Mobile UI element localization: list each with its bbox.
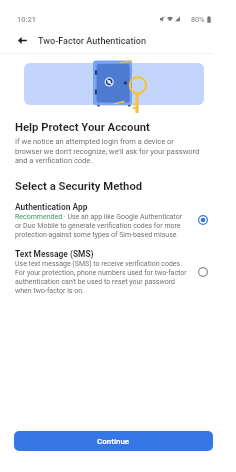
button[interactable]: Back	[14, 32, 31, 49]
button[interactable]: Authentication App selected	[198, 215, 208, 225]
staticText: Authentication App	[15, 202, 88, 212]
staticText: Continue	[97, 437, 130, 446]
staticText: 10:21	[17, 15, 37, 24]
button[interactable]: Text Message (SMS)	[198, 267, 208, 277]
staticText: Select a Security Method	[15, 180, 143, 193]
button[interactable]: Continue	[14, 431, 213, 451]
staticText: Help Protect Your Account	[15, 121, 150, 134]
staticText: Two-Factor Authentication	[38, 36, 147, 47]
staticText: 80%	[191, 15, 205, 23]
staticText: Recommended · Use an app like Google Aut…	[15, 213, 183, 239]
staticText: Text Message (SMS)	[15, 249, 94, 259]
staticText: If we notice an attempted login from a d…	[15, 137, 200, 164]
staticText: Use text message (SMS) to receive verifi…	[15, 260, 187, 295]
